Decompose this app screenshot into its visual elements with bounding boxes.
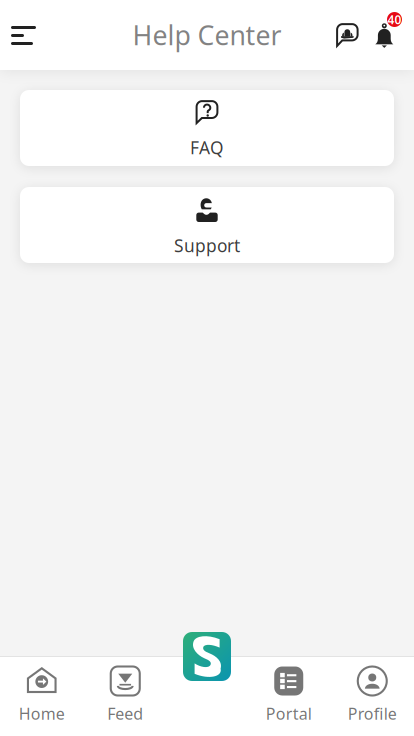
staticText: 40 [387,11,401,27]
button[interactable]: Menu [0,12,46,58]
staticText: Help Center [132,17,281,53]
button[interactable]: FAQ [20,90,394,166]
button[interactable]: Home [0,667,83,735]
button[interactable]: Profile [330,667,414,735]
staticText: Support [174,234,240,257]
staticText: Home [19,703,65,724]
button[interactable]: Feed [83,667,167,735]
staticText: FAQ [190,136,224,159]
staticText: Portal [266,703,312,724]
staticText: Profile [348,703,397,724]
button[interactable]: Notifications [366,12,408,62]
button[interactable]: Support [20,187,394,263]
button[interactable]: Messages [328,12,366,58]
button[interactable]: Portal [247,667,330,735]
staticText: Feed [107,703,143,724]
